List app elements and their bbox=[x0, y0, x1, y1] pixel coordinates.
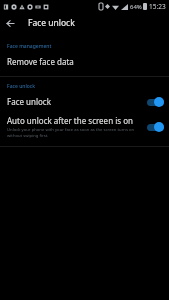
staticText: 64% bbox=[130, 3, 142, 11]
staticText: Face unlock bbox=[7, 96, 51, 107]
staticText: Auto unlock after the screen is on bbox=[7, 115, 133, 126]
staticText: Unlock your phone with your face as soon… bbox=[7, 127, 142, 139]
staticText: Face unlock bbox=[28, 17, 75, 29]
button[interactable]: Auto unlock after the screen is on bbox=[0, 111, 169, 143]
button[interactable]: Back bbox=[0, 13, 20, 33]
staticText: Remove face data bbox=[7, 56, 74, 67]
staticText: 15:23 bbox=[149, 2, 166, 11]
staticText: Face management bbox=[7, 43, 52, 50]
button[interactable]: Toggle bbox=[147, 122, 164, 132]
button[interactable]: Toggle bbox=[147, 97, 164, 107]
staticText: Face unlock bbox=[7, 83, 36, 90]
button[interactable]: Face unlock bbox=[0, 92, 169, 111]
button[interactable]: Remove face data bbox=[0, 52, 169, 70]
